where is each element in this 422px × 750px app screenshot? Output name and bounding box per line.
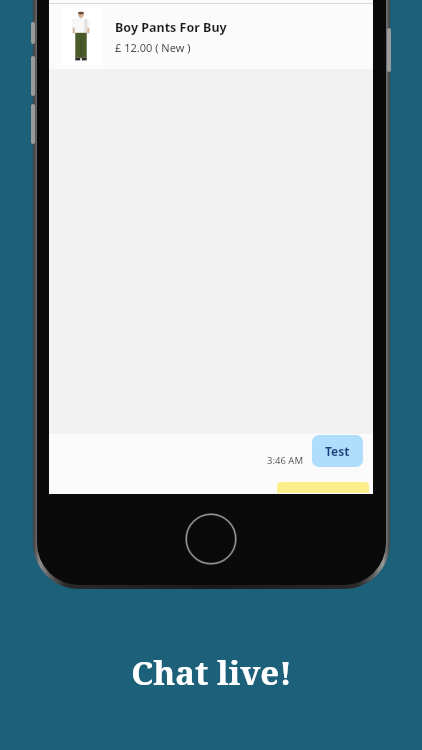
staticText: £ 12.00 ( New ) — [115, 40, 191, 55]
staticText: Boy Pants For Buy — [115, 19, 227, 36]
staticText: 3:46 AM — [267, 454, 304, 467]
button[interactable]: Boy Pants For Buy — [49, 4, 373, 69]
staticText: Chat live! — [131, 650, 292, 695]
button[interactable]: Home — [185, 513, 237, 565]
staticText: Test — [325, 443, 350, 459]
button[interactable] — [277, 482, 369, 493]
button[interactable]: Test — [312, 435, 363, 467]
